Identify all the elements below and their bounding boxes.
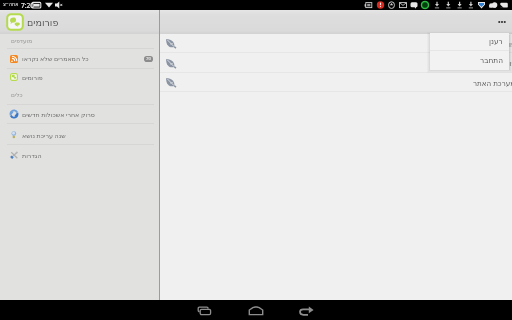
button[interactable]: התחבר — [430, 51, 509, 70]
button[interactable]: פורומים — [0, 10, 160, 34]
staticText: כל המאמרים שלא נקראו — [22, 54, 89, 63]
staticText: מערכת האתר — [473, 78, 512, 88]
button[interactable]: פורום כללי — [160, 53, 512, 73]
staticText: מועדפים — [11, 38, 33, 45]
staticText: פורום כללי — [483, 58, 512, 68]
button[interactable]: פורום התמיכה — [160, 34, 512, 53]
button[interactable]: הגדרות — [0, 145, 160, 165]
button[interactable]: פורומים — [0, 69, 160, 85]
staticText: הגדרות — [22, 152, 42, 159]
button[interactable]: מערכת האתר — [160, 73, 512, 92]
button[interactable]: כל המאמרים שלא נקראו — [0, 48, 160, 69]
staticText: שנה עריכת נושא — [22, 131, 66, 140]
button[interactable]: Back — [295, 300, 319, 320]
staticText: 7:20 — [21, 1, 35, 10]
staticText: כלים — [11, 92, 23, 99]
staticText: פורום התמיכה — [472, 39, 512, 49]
staticText: 70 — [146, 56, 151, 62]
staticText: אחה״צ — [3, 2, 19, 8]
button[interactable]: Home — [244, 300, 268, 320]
staticText: התחבר — [480, 56, 503, 65]
button[interactable]: More options — [490, 10, 512, 34]
staticText: פורומים — [27, 17, 59, 28]
button[interactable]: שנה עריכת נושא — [0, 125, 160, 145]
staticText: פורומים — [22, 74, 43, 81]
button[interactable]: רענן — [430, 33, 509, 50]
button[interactable]: סרוק אחרי אשכולות חדשים — [0, 104, 160, 124]
staticText: רענן — [489, 37, 503, 46]
button[interactable]: Recent apps — [194, 300, 218, 320]
staticText: סרוק אחרי אשכולות חדשים — [22, 110, 95, 119]
